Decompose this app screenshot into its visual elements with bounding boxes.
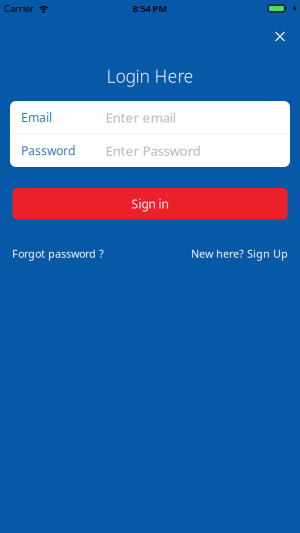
- staticText: Enter Password: [105, 142, 200, 159]
- button[interactable]: New here? Sign Up: [191, 246, 288, 261]
- staticText: Forgot password ?: [12, 246, 104, 261]
- button[interactable]: Forgot password ?: [12, 246, 104, 261]
- staticText: New here? Sign Up: [191, 246, 288, 261]
- staticText: Password: [21, 143, 75, 159]
- staticText: 8:54 PM: [132, 2, 167, 15]
- staticText: Enter email: [105, 108, 175, 126]
- staticText: Sign in: [131, 196, 168, 212]
- staticText: Email: [21, 109, 52, 125]
- button[interactable]: Close: [270, 26, 290, 46]
- staticText: Login Here: [106, 64, 193, 87]
- button[interactable]: Sign in: [12, 188, 287, 219]
- staticText: Carrier: [4, 2, 34, 15]
